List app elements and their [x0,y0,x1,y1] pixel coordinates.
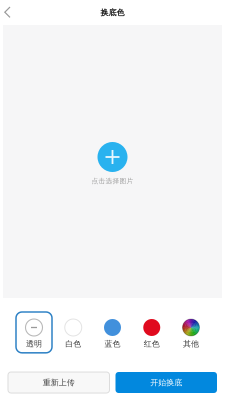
staticText: 重新上传 [43,378,75,387]
button[interactable]: 白色 [55,312,91,353]
button[interactable]: 透明 [16,312,52,353]
button[interactable]: 重新上传 [8,372,109,393]
staticText: 开始换底 [150,378,182,387]
staticText: 其他 [183,339,199,349]
button[interactable]: 蓝色 [94,312,130,353]
button[interactable]: Back [0,0,19,25]
staticText: 换底色 [100,8,124,17]
staticText: 白色 [65,339,81,349]
button[interactable]: 红色 [134,312,170,353]
button[interactable]: 开始换底 [115,372,217,393]
staticText: 透明 [26,339,42,349]
button[interactable]: 其他 [173,312,209,353]
staticText: 红色 [144,339,160,349]
staticText: 蓝色 [104,339,120,349]
staticText: 点击选择图片 [91,177,133,185]
